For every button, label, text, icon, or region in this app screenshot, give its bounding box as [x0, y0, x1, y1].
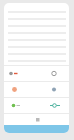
button[interactable]: Setting item	[36, 82, 69, 97]
button[interactable]: Setting item	[36, 98, 69, 113]
button[interactable]: Setting item	[36, 66, 69, 81]
button[interactable]: Setting item	[4, 98, 36, 113]
button[interactable]: Setting item	[4, 66, 36, 81]
button[interactable]: Setting item	[4, 82, 36, 97]
